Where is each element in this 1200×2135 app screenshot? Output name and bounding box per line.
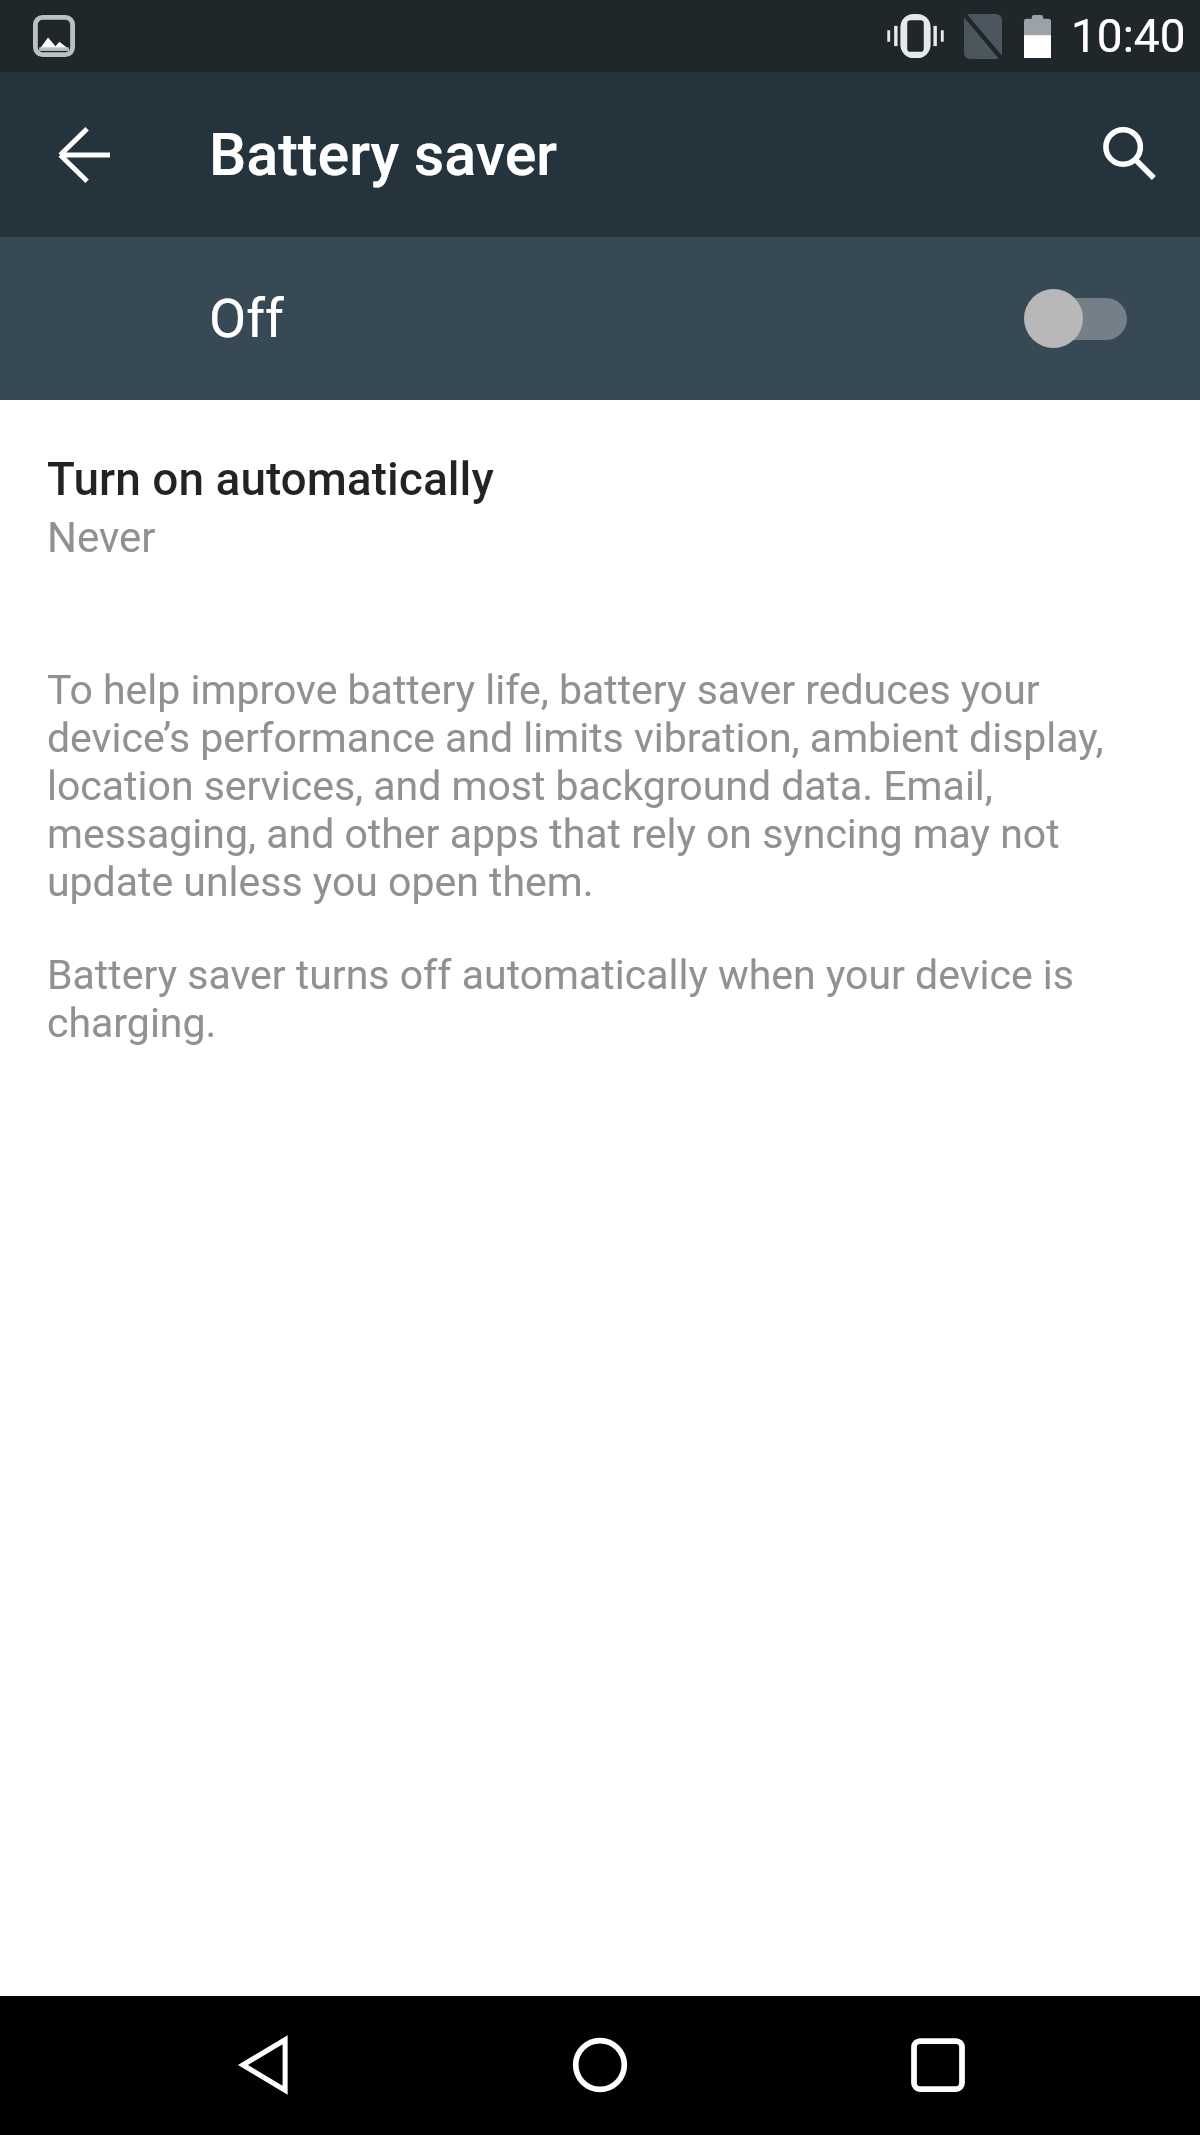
button[interactable]: Off (0, 237, 1200, 400)
staticText: Battery saver turns off automatically wh… (47, 951, 1148, 1047)
button[interactable]: Recent apps (878, 2005, 998, 2125)
staticText: Never (47, 513, 156, 562)
staticText: To help improve battery life, battery sa… (47, 666, 1148, 906)
button[interactable]: Back (204, 2005, 324, 2125)
button[interactable]: Home (540, 2005, 660, 2125)
button[interactable]: Turn on automatically (0, 452, 1200, 562)
button[interactable]: Search (1073, 99, 1185, 211)
staticText: Turn on automatically (47, 452, 494, 506)
staticText: Battery saver (209, 120, 558, 189)
button[interactable]: Navigate up (28, 99, 140, 211)
staticText: Off (209, 287, 284, 350)
staticText: 10:40 (1071, 9, 1186, 63)
